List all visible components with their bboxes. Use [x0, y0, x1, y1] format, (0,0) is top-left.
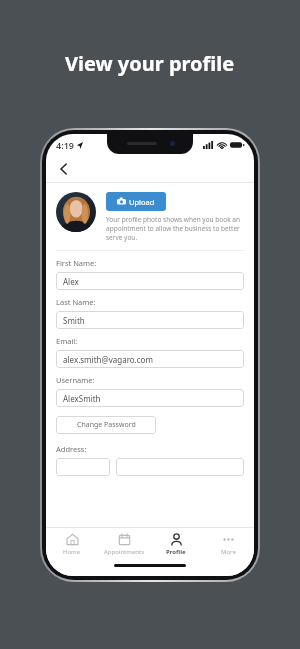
staticText: Last Name:	[56, 297, 96, 307]
button[interactable]: Smith	[56, 311, 244, 329]
staticText: alex.smith@vagaro.com	[63, 354, 153, 365]
button[interactable]: More	[202, 533, 254, 556]
button[interactable]: Upload	[106, 192, 166, 211]
button[interactable]	[116, 458, 244, 476]
staticText: More	[221, 548, 236, 556]
staticText: Change Password	[77, 420, 136, 430]
staticText: Address:	[56, 444, 87, 454]
button[interactable]: Home	[46, 533, 98, 556]
button[interactable]: AlexSmith	[56, 389, 244, 407]
staticText: Username:	[56, 375, 95, 385]
button[interactable]: Profile	[150, 533, 202, 556]
button[interactable]: alex.smith@vagaro.com	[56, 350, 244, 368]
button[interactable]: Appointments	[98, 533, 150, 556]
staticText: Profile	[166, 548, 186, 556]
button[interactable]: Change Password	[56, 416, 156, 434]
staticText: Email:	[56, 336, 78, 346]
staticText: Your profile photo shows when you book a…	[106, 215, 244, 242]
staticText: AlexSmith	[63, 393, 101, 404]
staticText: Upload	[129, 197, 155, 207]
button[interactable]: Back	[54, 159, 74, 179]
staticText: Alex	[63, 276, 79, 287]
staticText: 4:19	[56, 139, 74, 151]
button[interactable]	[56, 458, 110, 476]
staticText: Smith	[63, 315, 85, 326]
staticText: Home	[63, 548, 81, 556]
button[interactable]: Alex	[56, 272, 244, 290]
staticText: View your profile	[65, 50, 235, 77]
staticText: Appointments	[104, 548, 145, 556]
staticText: First Name:	[56, 258, 97, 268]
button[interactable]: Profile photo	[56, 192, 96, 232]
